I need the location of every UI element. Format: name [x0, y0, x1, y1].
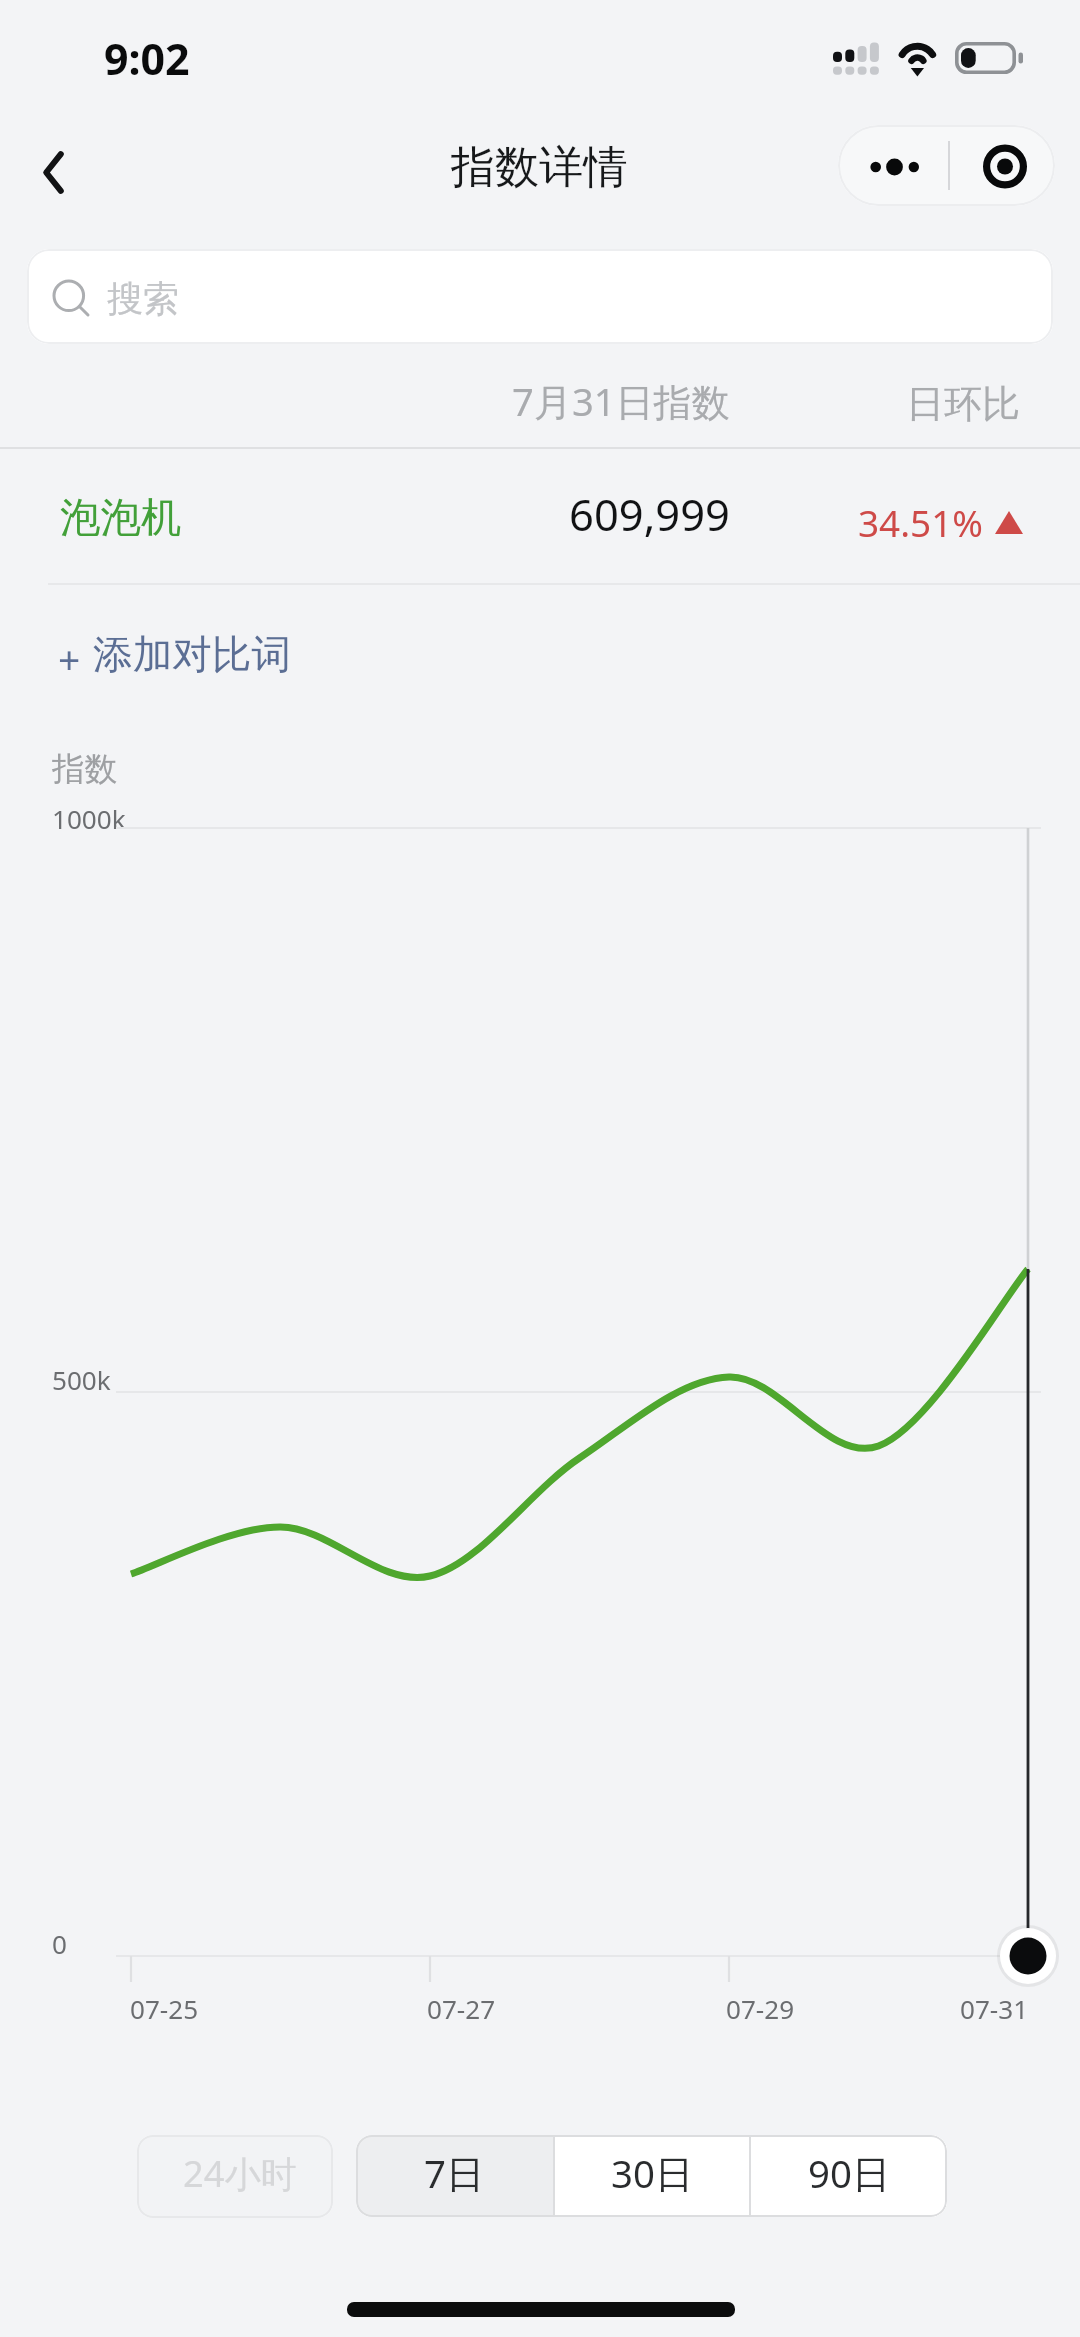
button[interactable]: 24小时 [137, 2135, 333, 2218]
button[interactable]: 搜索 [27, 249, 1053, 344]
staticText: 07-31 [960, 1991, 1029, 2027]
staticText: 9:02 [104, 29, 190, 87]
staticText: 日环比 [906, 380, 1021, 428]
button[interactable]: 泡泡机 [0, 449, 1080, 583]
staticText: 07-27 [427, 1991, 496, 2027]
staticText: 0 [52, 1926, 67, 1962]
staticText: 7日 [424, 2147, 485, 2199]
staticText: 搜索 [107, 276, 179, 321]
staticText: 24小时 [183, 2148, 298, 2198]
staticText: 指数详情 [451, 140, 628, 196]
button[interactable]: + [0, 585, 1080, 725]
button[interactable]: 7日 [356, 2135, 553, 2217]
button[interactable]: 90日 [751, 2135, 947, 2217]
button[interactable]: Close mini program [949, 125, 1055, 206]
staticText: 1000k [52, 801, 126, 837]
staticText: + [58, 632, 81, 685]
button[interactable]: More options [838, 125, 949, 206]
staticText: 609,999 [569, 484, 730, 543]
staticText: 90日 [808, 2147, 891, 2199]
button[interactable]: 30日 [555, 2135, 749, 2217]
staticText: 添加对比词 [93, 630, 291, 680]
button[interactable]: Back [9, 124, 97, 220]
staticText: 500k [52, 1362, 111, 1398]
staticText: 30日 [611, 2147, 694, 2199]
staticText: 07-29 [726, 1991, 795, 2027]
staticText: 07-25 [130, 1991, 199, 2027]
staticText: 泡泡机 [60, 492, 182, 543]
staticText: 7月31日指数 [512, 375, 730, 427]
staticText: 34.51% [858, 498, 983, 548]
staticText: 指数 [52, 749, 118, 790]
